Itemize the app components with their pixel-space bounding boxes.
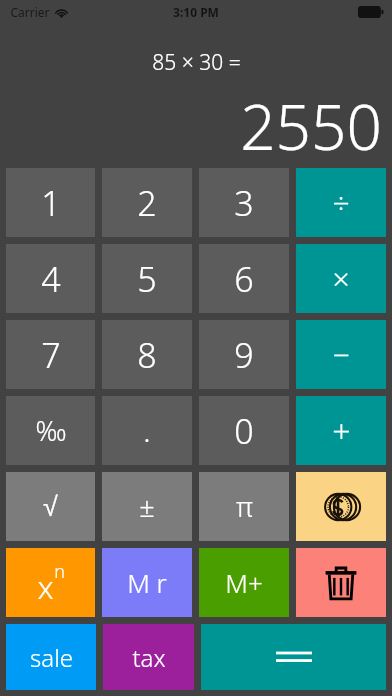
button[interactable]: 0	[199, 396, 289, 465]
staticText: x	[37, 565, 54, 609]
button[interactable]: π	[199, 472, 289, 541]
button[interactable]: sale	[6, 624, 96, 690]
button[interactable]: .	[102, 396, 192, 465]
staticText: .	[143, 410, 151, 451]
staticText: ÷	[332, 182, 350, 223]
staticText: 4	[41, 256, 61, 302]
button[interactable]: 5	[102, 244, 192, 313]
button[interactable]: ÷	[296, 168, 386, 237]
staticText: Carrier	[10, 4, 50, 20]
button[interactable]: ×	[296, 244, 386, 313]
staticText: 6	[234, 256, 254, 302]
button[interactable]: M+	[199, 548, 289, 617]
staticText: +	[332, 409, 351, 453]
button[interactable]: √	[6, 472, 95, 541]
staticText: ±	[139, 488, 155, 525]
button[interactable]: +	[296, 396, 386, 465]
button[interactable]: 4	[6, 244, 95, 313]
button[interactable]: ±	[102, 472, 192, 541]
staticText: √	[43, 492, 58, 522]
button[interactable]: 6	[199, 244, 289, 313]
staticText: 8	[137, 332, 157, 378]
staticText: 9	[234, 332, 254, 378]
staticText: M r	[127, 565, 167, 600]
button[interactable]: M r	[102, 548, 192, 617]
button[interactable]: x	[6, 548, 95, 617]
staticText: 3:10 PM	[173, 4, 219, 20]
staticText: 3	[234, 180, 254, 226]
staticText: 2550	[240, 84, 382, 168]
staticText: tax	[132, 641, 166, 674]
staticText: 85 × 30 =	[152, 48, 241, 77]
button[interactable]: 7	[6, 320, 95, 389]
button[interactable]: 2	[102, 168, 192, 237]
staticText: ‰	[35, 412, 67, 449]
button[interactable]: ‰	[6, 396, 95, 465]
button[interactable]: 9	[199, 320, 289, 389]
staticText: 7	[41, 332, 61, 378]
staticText: sale	[30, 641, 73, 674]
staticText: M+	[225, 565, 263, 600]
staticText: π	[236, 488, 253, 525]
button[interactable]: Currency	[296, 472, 386, 541]
staticText: 5	[137, 256, 157, 302]
staticText: 0	[234, 408, 254, 454]
staticText: 2	[137, 180, 157, 226]
button[interactable]: Delete	[296, 548, 386, 617]
button[interactable]: 3	[199, 168, 289, 237]
button[interactable]: 8	[102, 320, 192, 389]
staticText: ×	[332, 258, 350, 299]
button[interactable]: tax	[103, 624, 194, 690]
button[interactable]: 1	[6, 168, 95, 237]
staticText: 1	[41, 180, 61, 226]
button[interactable]: −	[296, 320, 386, 389]
staticText: −	[332, 334, 350, 375]
button[interactable]: Equals	[201, 624, 386, 690]
staticText: n	[54, 559, 65, 584]
